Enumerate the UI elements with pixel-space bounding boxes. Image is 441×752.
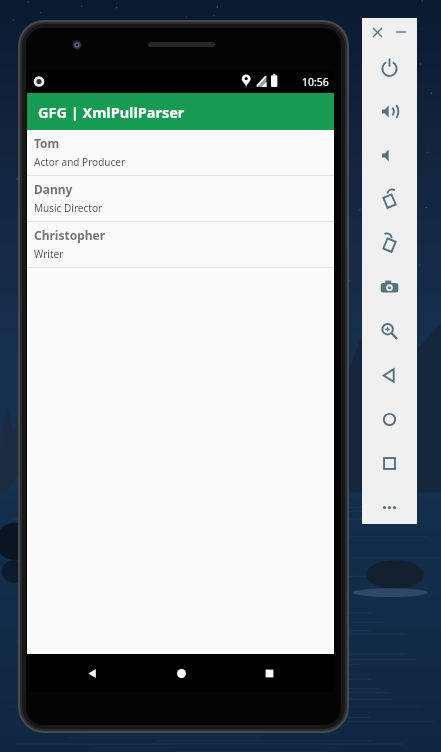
button[interactable]: Volume down (374, 140, 405, 171)
button[interactable]: Back (68, 655, 116, 691)
button[interactable]: Minimize (391, 22, 411, 42)
button[interactable]: Recent apps (245, 655, 293, 691)
button[interactable]: Rotate right (374, 228, 405, 259)
button[interactable]: Volume up (374, 96, 405, 127)
staticText: 10:56 (302, 75, 329, 89)
button[interactable]: Home (374, 404, 405, 435)
button[interactable]: More options (374, 492, 405, 523)
staticText: Music Director (34, 201, 103, 215)
button[interactable]: Power (374, 52, 405, 83)
button[interactable]: Overview (374, 448, 405, 479)
button[interactable]: Danny (27, 176, 334, 222)
staticText: GFG | XmlPullParser (38, 102, 185, 122)
button[interactable]: GFG | XmlPullParser (27, 93, 334, 130)
staticText: Danny (34, 181, 73, 197)
staticText: Tom (34, 135, 60, 151)
button[interactable]: Close (367, 22, 387, 42)
button[interactable]: Tom (27, 130, 334, 176)
button[interactable]: Home (157, 655, 205, 691)
button[interactable]: Screenshot (374, 272, 405, 303)
staticText: Actor and Producer (34, 155, 126, 169)
button[interactable]: Rotate left (374, 184, 405, 215)
staticText: Writer (34, 247, 64, 261)
button[interactable]: Zoom (374, 316, 405, 347)
button[interactable]: Christopher (27, 222, 334, 268)
staticText: Christopher (34, 227, 106, 243)
button[interactable]: Back (374, 360, 405, 391)
